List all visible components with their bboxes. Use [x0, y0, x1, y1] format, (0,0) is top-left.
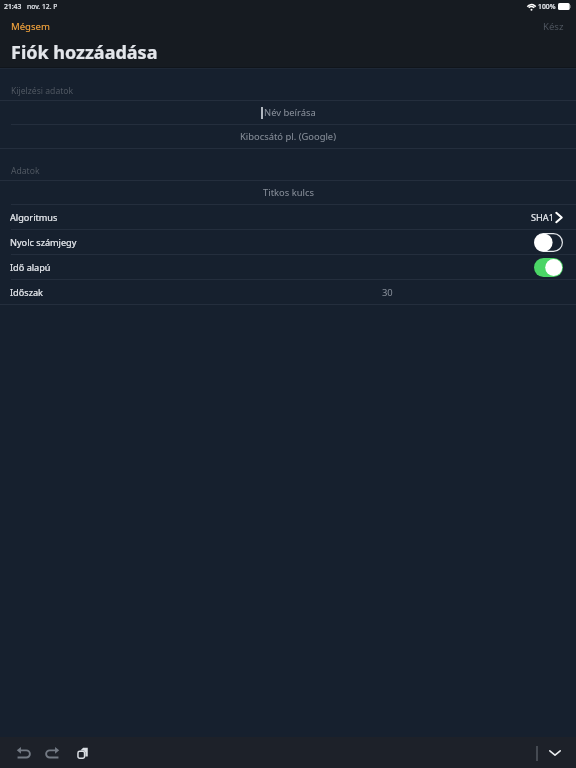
staticText: Kijelzési adatok — [11, 85, 74, 97]
button[interactable]: Hide keyboard — [543, 741, 567, 765]
staticText: Adatok — [11, 165, 40, 177]
button[interactable]: Kész — [532, 16, 576, 37]
staticText: Algoritmus — [10, 211, 58, 223]
staticText: Kész — [543, 20, 564, 33]
staticText: Titkos kulcs — [263, 186, 314, 199]
staticText: nov. 12. P — [27, 2, 58, 11]
button[interactable]: Redo — [41, 741, 65, 765]
button[interactable]: Algoritmus — [0, 205, 576, 229]
button[interactable]: Idő alapú — [0, 255, 576, 279]
staticText: 30 — [382, 286, 393, 299]
staticText: 21:43 — [4, 2, 22, 11]
staticText: Mégsem — [11, 20, 50, 33]
button[interactable]: Undo — [11, 741, 35, 765]
staticText: Fiók hozzáadása — [11, 40, 158, 65]
staticText: Nyolc számjegy — [10, 236, 77, 248]
staticText: SHA1 — [531, 211, 554, 223]
button[interactable]: Név beírása — [0, 101, 576, 124]
staticText: Időszak — [10, 286, 43, 298]
button[interactable]: Paste — [71, 741, 95, 765]
button[interactable]: Időszak — [0, 280, 576, 304]
button[interactable]: Mégsem — [0, 16, 61, 37]
button[interactable]: Kibocsátó pl. (Google) — [0, 125, 576, 148]
staticText: 100% — [538, 2, 556, 11]
button[interactable]: Nyolc számjegy — [0, 230, 576, 254]
staticText: Idő alapú — [10, 261, 51, 273]
staticText: Név beírása — [264, 106, 316, 119]
staticText: Kibocsátó pl. (Google) — [240, 130, 336, 143]
button[interactable]: Titkos kulcs — [0, 181, 576, 204]
